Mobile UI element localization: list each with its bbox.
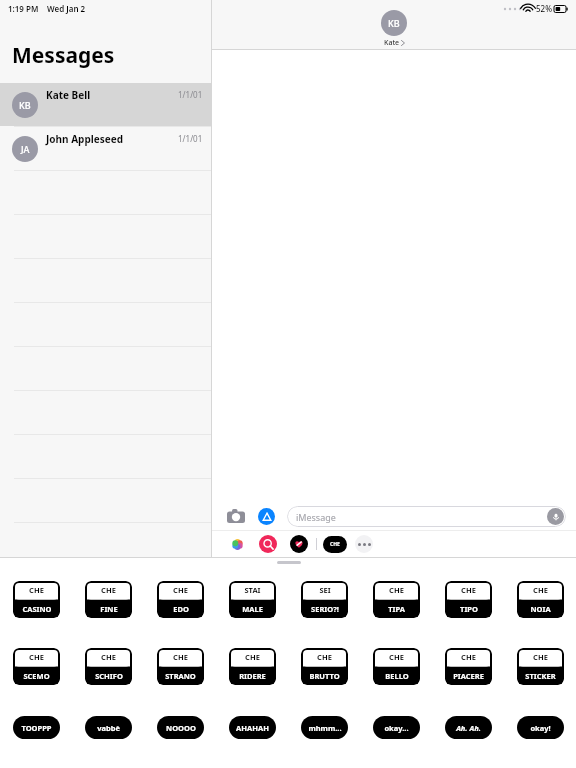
staticText: MALE	[242, 604, 263, 614]
staticText: CHE	[173, 585, 188, 595]
button[interactable]: CHE	[13, 581, 60, 618]
staticText: BELLO	[385, 671, 409, 681]
staticText: BRUTTO	[309, 671, 340, 681]
staticText: CHE	[245, 652, 260, 662]
button[interactable]: CHE	[85, 648, 132, 685]
button[interactable]: mhmm...	[301, 716, 348, 739]
button[interactable]: Dictate	[547, 508, 564, 525]
staticText: CASINO	[22, 604, 52, 614]
staticText: RIDERE	[239, 671, 266, 681]
button[interactable]: CHE	[85, 581, 132, 618]
button[interactable]: CHE	[13, 648, 60, 685]
staticText: TIPA	[388, 604, 405, 614]
button[interactable]: Stickers	[289, 534, 309, 554]
button[interactable]: JA	[0, 127, 211, 170]
staticText: CHE	[101, 585, 116, 595]
staticText: 52%	[536, 3, 552, 14]
staticText: NOIA	[530, 604, 551, 614]
button[interactable]: SEI	[301, 581, 348, 618]
staticText: CHE	[389, 585, 404, 595]
button[interactable]: STAI	[229, 581, 276, 618]
staticText: FINE	[100, 604, 118, 614]
button[interactable]: CHE	[445, 648, 492, 685]
button[interactable]: CHE	[517, 648, 564, 685]
staticText: SCEMO	[23, 671, 50, 681]
button[interactable]: okay!	[517, 716, 564, 739]
button[interactable]: Photos	[227, 534, 247, 554]
staticText: Kate	[384, 38, 400, 48]
staticText: 1/1/01	[178, 133, 203, 144]
staticText: CHE	[317, 652, 332, 662]
staticText: STAI	[244, 585, 261, 595]
button[interactable]: CHE	[517, 581, 564, 618]
staticText: Kate Bell	[46, 88, 91, 102]
staticText: 1:19 PM	[8, 3, 39, 14]
staticText: CHE	[533, 585, 548, 595]
staticText: KB	[388, 17, 400, 29]
button[interactable]: Image search	[258, 534, 278, 554]
button[interactable]: CHE	[157, 581, 204, 618]
staticText: TIPO	[460, 604, 478, 614]
staticText: PIACERE	[453, 671, 484, 681]
staticText: NOOOO	[166, 723, 196, 733]
staticText: STRANO	[165, 671, 196, 681]
staticText: mhmm...	[308, 723, 342, 733]
staticText: CHE	[29, 652, 44, 662]
staticText: CHE	[461, 585, 476, 595]
button[interactable]: CHE	[445, 581, 492, 618]
staticText: SCHIFO	[95, 671, 123, 681]
staticText: CHE	[461, 652, 476, 662]
button[interactable]: KB	[381, 10, 407, 48]
staticText: CHE	[101, 652, 116, 662]
staticText: Messages	[12, 41, 115, 70]
staticText: STICKER	[525, 671, 556, 681]
staticText: 1/1/01	[178, 89, 203, 100]
button[interactable]: CHE	[373, 581, 420, 618]
staticText: iMessage	[296, 511, 336, 523]
staticText: EDO	[173, 604, 189, 614]
button[interactable]: CHE	[373, 648, 420, 685]
button[interactable]: CHE	[301, 648, 348, 685]
staticText: Wed Jan 2	[47, 3, 86, 14]
staticText: CHE	[29, 585, 44, 595]
button[interactable]: iMessage	[287, 506, 566, 527]
staticText: Ah. Ah.	[456, 723, 481, 733]
staticText: SERIO?!	[311, 604, 339, 614]
staticText: John Appleseed	[46, 132, 123, 146]
button[interactable]: More apps	[355, 535, 373, 553]
button[interactable]: CHE	[157, 648, 204, 685]
staticText: JA	[21, 143, 30, 155]
staticText: CHE	[533, 652, 548, 662]
button[interactable]: KB	[0, 83, 211, 126]
button[interactable]: CHE	[229, 648, 276, 685]
staticText: okay...	[384, 723, 409, 733]
staticText: SEI	[319, 585, 331, 595]
staticText: okay!	[530, 723, 551, 733]
button[interactable]: NOOOO	[157, 716, 204, 739]
staticText: AHAHAH	[236, 723, 269, 733]
button[interactable]: AHAHAH	[229, 716, 276, 739]
button[interactable]: Camera	[226, 506, 246, 526]
staticText: CHE	[173, 652, 188, 662]
button[interactable]: okay...	[373, 716, 420, 739]
button[interactable]: vabbè	[85, 716, 132, 739]
button[interactable]: CHE	[323, 536, 347, 553]
button[interactable]: TOOPPP	[13, 716, 60, 739]
staticText: CHE	[389, 652, 404, 662]
staticText: vabbè	[97, 723, 120, 733]
button[interactable]: App Store	[256, 506, 276, 526]
staticText: CHE	[330, 541, 340, 548]
staticText: KB	[19, 99, 31, 111]
staticText: TOOPPP	[21, 723, 52, 733]
button[interactable]: Ah. Ah.	[445, 716, 492, 739]
